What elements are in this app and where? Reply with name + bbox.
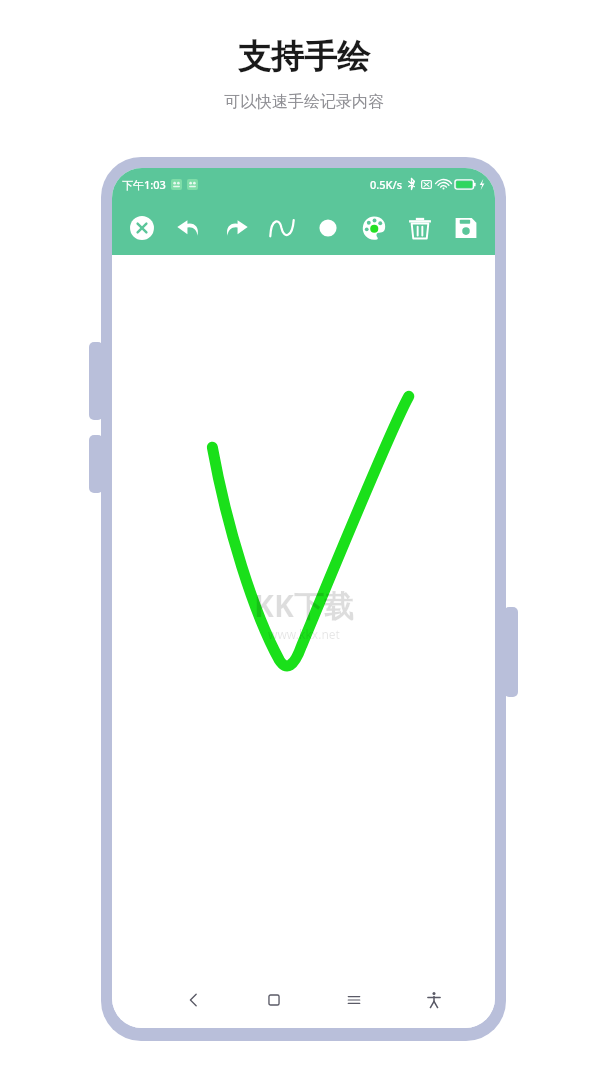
staticText: 支持手绘 (238, 36, 370, 78)
button[interactable]: Recents (332, 978, 376, 1022)
button[interactable]: Brush size (305, 200, 351, 255)
staticText: www.kkx.net (268, 626, 340, 642)
button[interactable]: Close (118, 200, 165, 255)
button[interactable]: Redo (212, 200, 259, 255)
button[interactable]: Back (172, 978, 216, 1022)
staticText: 下午1:03 (122, 177, 166, 192)
button[interactable]: Accessibility (412, 978, 456, 1022)
button[interactable]: Home (252, 978, 296, 1022)
button[interactable]: Stroke style (259, 200, 305, 255)
button[interactable]: Save (443, 200, 489, 255)
button[interactable]: Delete (397, 200, 443, 255)
staticText: 可以快速手绘记录内容 (224, 92, 384, 112)
staticText: KK下载 (254, 585, 354, 626)
button[interactable]: Color palette (351, 200, 397, 255)
staticText: 0.5K/s (370, 177, 403, 192)
button[interactable]: Undo (165, 200, 212, 255)
